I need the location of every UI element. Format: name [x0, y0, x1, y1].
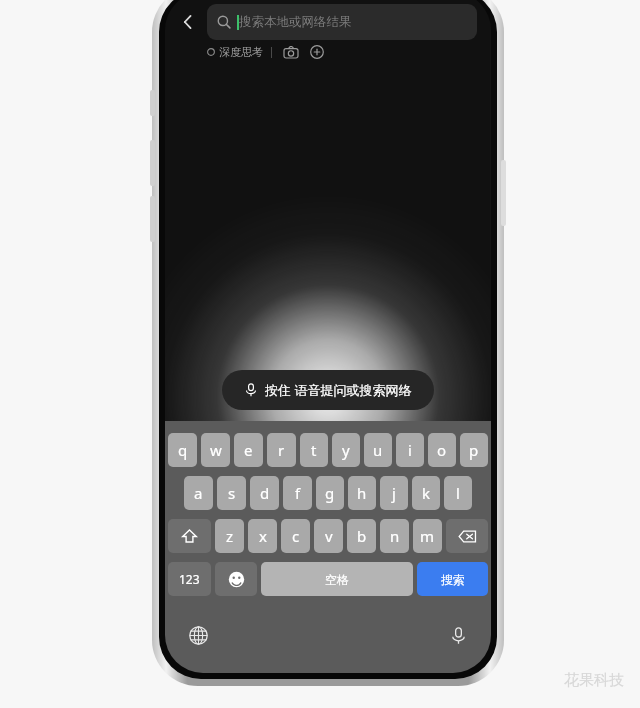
button[interactable]: Backspace	[446, 519, 488, 553]
button[interactable]: t	[300, 433, 328, 467]
staticText: g	[325, 483, 335, 503]
staticText: i	[408, 440, 412, 460]
button[interactable]: n	[380, 519, 409, 553]
button[interactable]: z	[215, 519, 244, 553]
staticText: f	[295, 483, 301, 503]
staticText: y	[342, 440, 350, 460]
button[interactable]: i	[396, 433, 424, 467]
staticText: o	[437, 440, 447, 460]
staticText: 深度思考	[219, 45, 263, 59]
button[interactable]: 123	[168, 562, 211, 596]
button[interactable]: Voice input	[443, 620, 473, 650]
button[interactable]: k	[412, 476, 440, 510]
button[interactable]: m	[413, 519, 442, 553]
staticText: j	[392, 483, 396, 503]
button[interactable]: q	[168, 433, 197, 467]
button[interactable]: l	[444, 476, 472, 510]
button[interactable]: c	[281, 519, 310, 553]
staticText: 空格	[325, 572, 349, 587]
button[interactable]: v	[314, 519, 343, 553]
staticText: m	[420, 526, 435, 546]
button[interactable]: 搜索本地或网络结果	[207, 4, 477, 40]
button[interactable]: r	[267, 433, 296, 467]
staticText: d	[260, 483, 270, 503]
staticText: w	[210, 440, 222, 460]
button[interactable]: f	[283, 476, 312, 510]
staticText: 搜索	[441, 572, 465, 587]
staticText: u	[373, 440, 383, 460]
staticText: z	[226, 526, 234, 546]
staticText: n	[390, 526, 400, 546]
button[interactable]: g	[316, 476, 344, 510]
button[interactable]: b	[347, 519, 376, 553]
staticText: 123	[179, 571, 200, 587]
staticText: e	[244, 440, 253, 460]
staticText: k	[422, 483, 431, 503]
button[interactable]: p	[460, 433, 488, 467]
button[interactable]: 空格	[261, 562, 413, 596]
button[interactable]: h	[348, 476, 376, 510]
button[interactable]: x	[248, 519, 277, 553]
staticText: 按住 语音提问或搜索网络	[265, 381, 412, 399]
button[interactable]: y	[332, 433, 360, 467]
button[interactable]: s	[217, 476, 246, 510]
staticText: a	[194, 483, 203, 503]
staticText: b	[357, 526, 367, 546]
button[interactable]: Shift	[168, 519, 211, 553]
button[interactable]: Change language	[183, 620, 213, 650]
button[interactable]: a	[184, 476, 213, 510]
staticText: 花果科技	[564, 671, 624, 690]
button[interactable]: Back	[171, 5, 205, 39]
staticText: q	[178, 440, 188, 460]
staticText: v	[325, 526, 333, 546]
staticText: c	[292, 526, 300, 546]
button[interactable]: 深度思考	[207, 42, 263, 62]
staticText: x	[259, 526, 267, 546]
staticText: h	[357, 483, 367, 503]
button[interactable]: e	[234, 433, 263, 467]
button[interactable]: j	[380, 476, 408, 510]
staticText: t	[311, 440, 317, 460]
staticText: r	[278, 440, 285, 460]
button[interactable]: Camera	[281, 42, 301, 62]
staticText: s	[228, 483, 236, 503]
staticText: 搜索本地或网络结果	[239, 14, 352, 30]
button[interactable]: 搜索	[417, 562, 488, 596]
button[interactable]: 按住 语音提问或搜索网络	[222, 370, 434, 410]
staticText: p	[469, 440, 479, 460]
button[interactable]: Emoji	[215, 562, 257, 596]
button[interactable]: d	[250, 476, 279, 510]
staticText: l	[456, 483, 460, 503]
button[interactable]: u	[364, 433, 392, 467]
button[interactable]: o	[428, 433, 456, 467]
button[interactable]: Add	[307, 42, 327, 62]
button[interactable]: w	[201, 433, 230, 467]
